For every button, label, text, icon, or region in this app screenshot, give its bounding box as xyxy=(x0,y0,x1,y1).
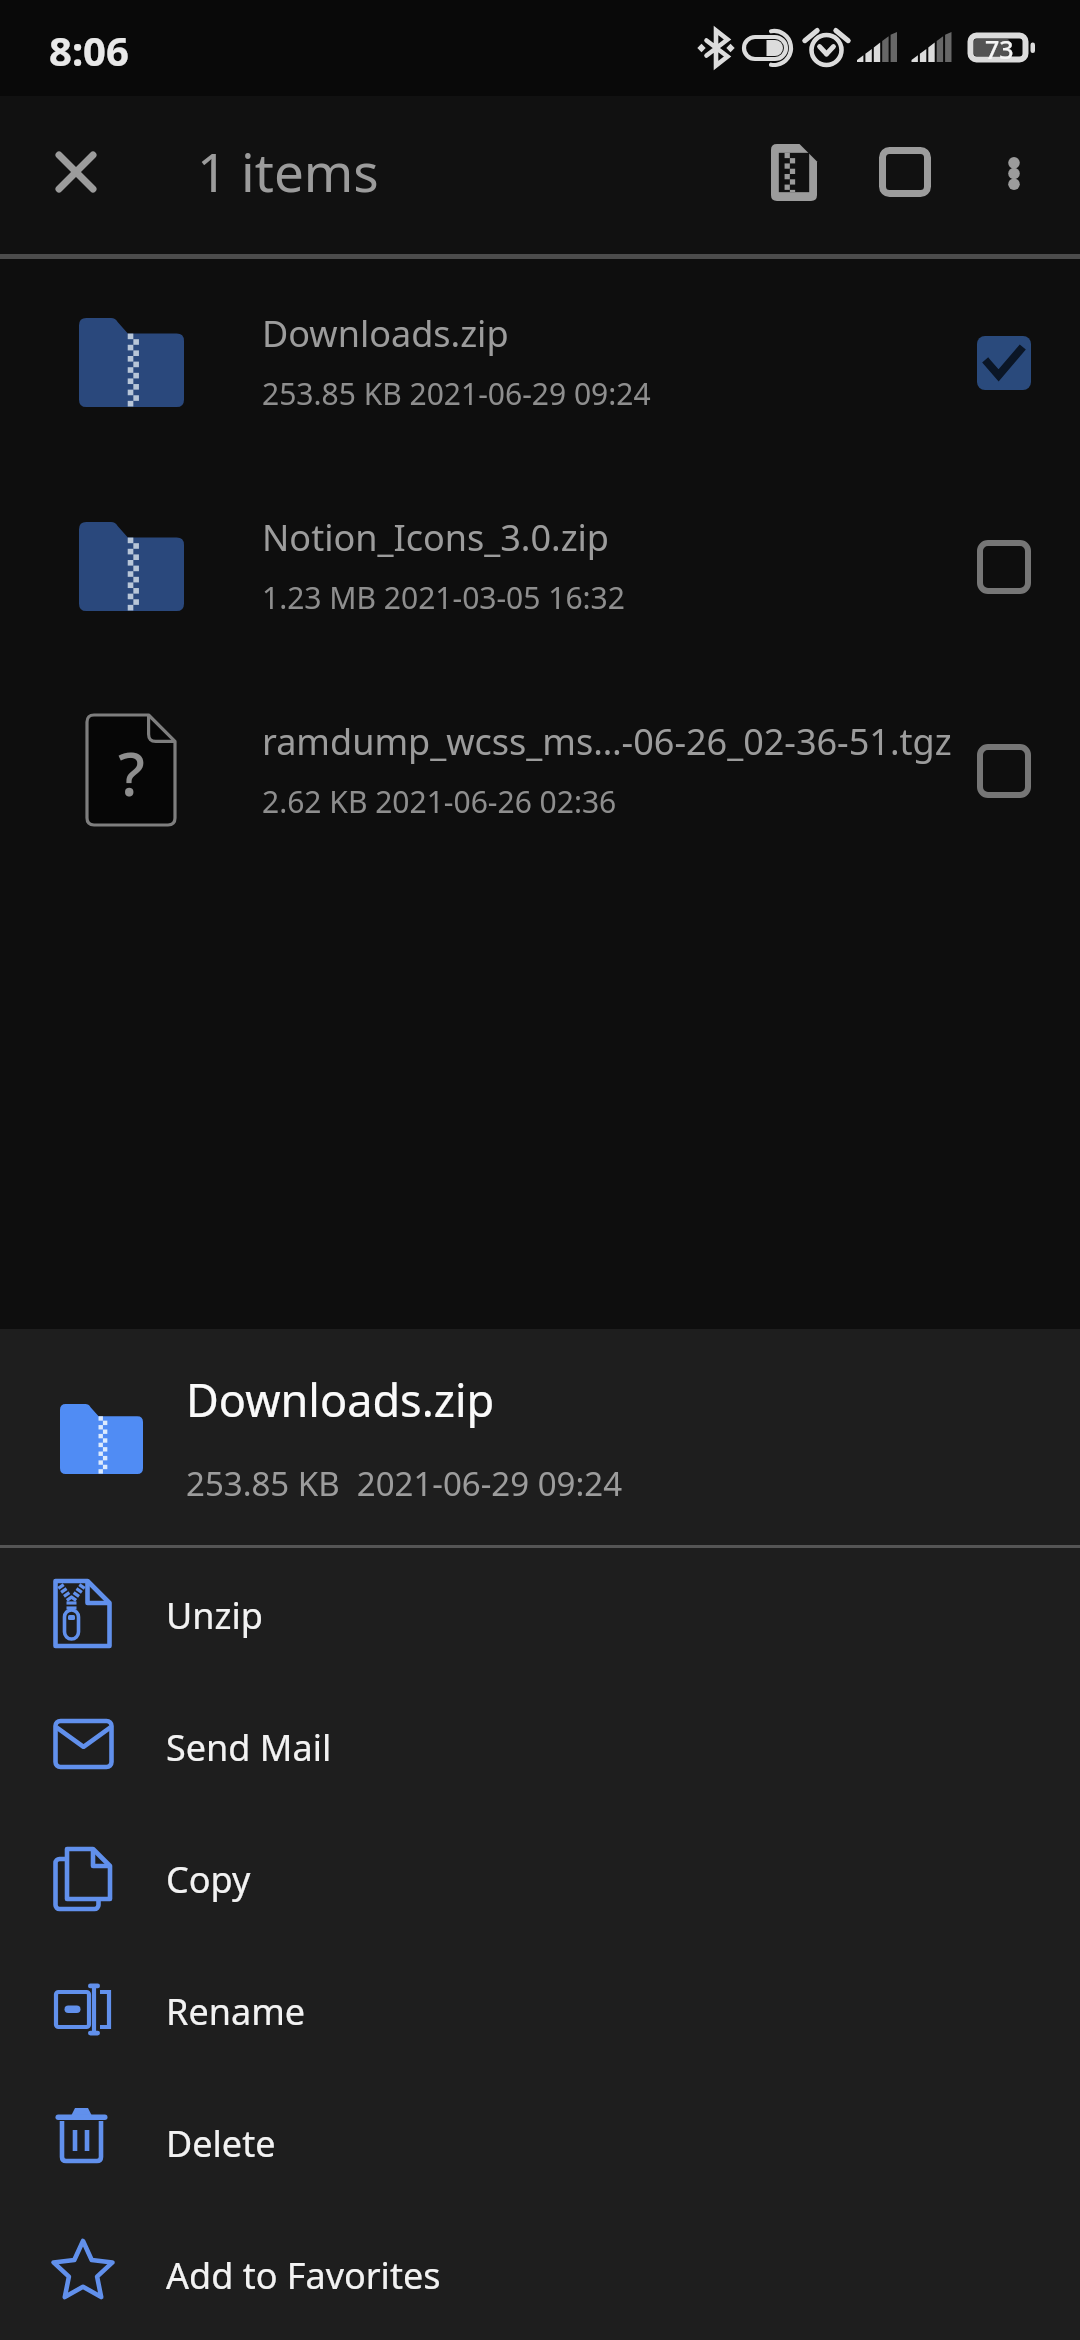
button[interactable]: More options xyxy=(958,117,1070,229)
button[interactable]: Rename xyxy=(0,1944,1080,2076)
button[interactable]: Unzip xyxy=(0,1548,1080,1680)
staticText: 73 xyxy=(985,32,1014,66)
staticText: 1 items xyxy=(197,135,379,207)
staticText: Send Mail xyxy=(166,1723,332,1772)
staticText: Downloads.zip xyxy=(262,309,509,358)
button[interactable]: Downloads.zip xyxy=(0,259,1080,463)
button[interactable]: Close selection xyxy=(21,117,131,227)
button[interactable]: Compress xyxy=(738,116,850,228)
staticText: ? xyxy=(118,732,145,814)
staticText: Notion_Icons_3.0.zip xyxy=(262,513,610,562)
button[interactable]: Add to Favorites xyxy=(0,2208,1080,2340)
staticText: ramdump_wcss_ms…-06-26_02-36-51.tgz xyxy=(262,717,952,766)
button[interactable]: Send Mail xyxy=(0,1680,1080,1812)
staticText: 253.85 KB 2021-06-29 09:24 xyxy=(186,1461,623,1506)
button[interactable]: Notion_Icons_3.0.zip xyxy=(0,463,1080,667)
staticText: Unzip xyxy=(166,1591,263,1640)
staticText: Delete xyxy=(166,2119,276,2168)
staticText: 8:06 xyxy=(49,23,129,77)
staticText: 2.62 KB 2021-06-26 02:36 xyxy=(262,781,617,822)
staticText: 1.23 MB 2021-03-05 16:32 xyxy=(262,577,625,618)
staticText: Copy xyxy=(166,1855,251,1904)
button[interactable]: Copy xyxy=(0,1812,1080,1944)
button[interactable]: Selected xyxy=(966,325,1042,401)
button[interactable]: ? xyxy=(0,667,1080,871)
button[interactable]: Not selected xyxy=(966,733,1042,809)
staticText: Downloads.zip xyxy=(186,1369,495,1430)
button[interactable]: Not selected xyxy=(966,529,1042,605)
staticText: 253.85 KB 2021-06-29 09:24 xyxy=(262,373,651,414)
button[interactable]: Delete xyxy=(0,2076,1080,2208)
button[interactable]: Select all xyxy=(849,116,961,228)
staticText: Rename xyxy=(166,1987,306,2036)
staticText: Add to Favorites xyxy=(166,2251,441,2300)
